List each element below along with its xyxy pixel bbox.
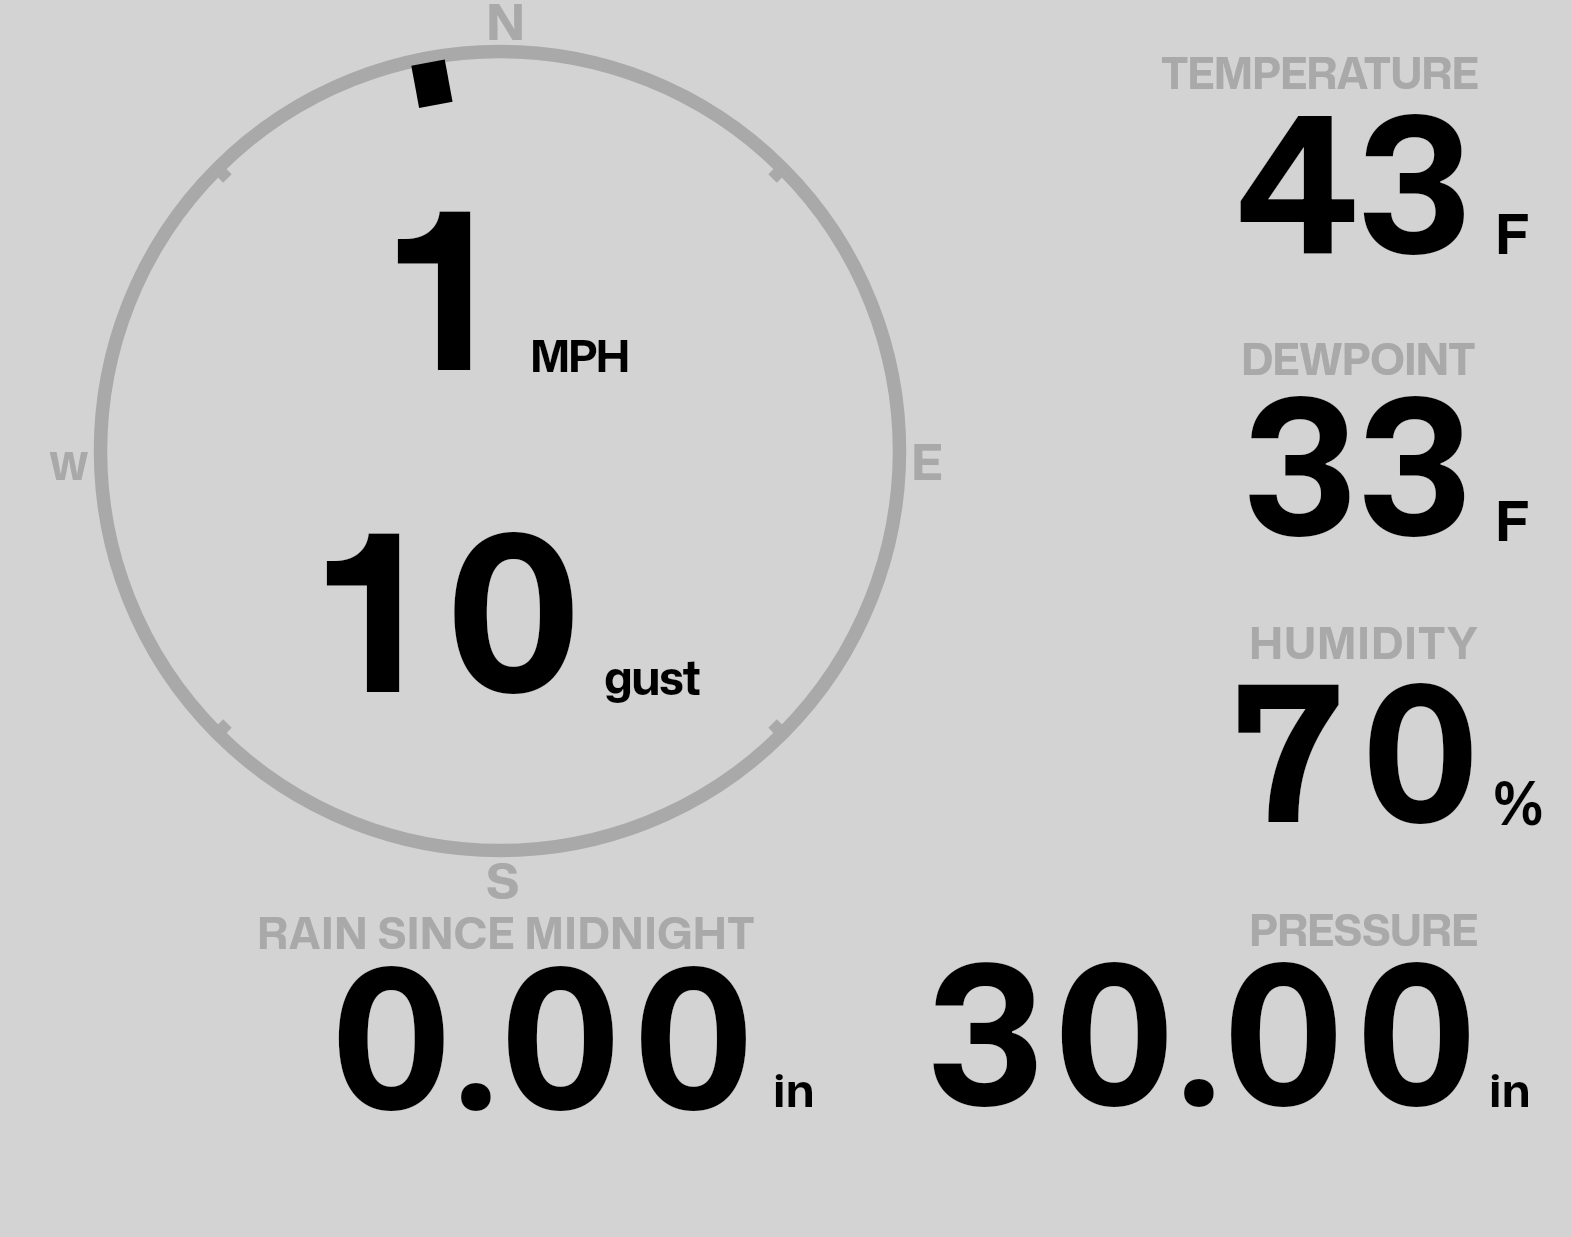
button[interactable]: Humidity 70 percent <box>1140 608 1560 838</box>
staticText: MPH <box>530 324 629 386</box>
staticText: % <box>1492 759 1545 845</box>
button[interactable]: Dewpoint 33 degrees Fahrenheit <box>1140 325 1560 555</box>
staticText: 33 <box>1244 328 1472 596</box>
staticText: PRESSURE <box>1249 899 1478 960</box>
staticText: 70 <box>1232 615 1500 883</box>
staticText: HUMIDITY <box>1249 612 1479 673</box>
staticText: 10 <box>322 452 613 762</box>
button[interactable]: Wind compass, 1 MPH, gusting 10 <box>95 45 905 855</box>
staticText: in <box>1489 1057 1531 1122</box>
staticText: E <box>911 425 943 496</box>
staticText: 43 <box>1236 46 1472 314</box>
staticText: F <box>1495 194 1530 272</box>
staticText: W <box>49 437 89 492</box>
staticText: 30.00 <box>928 892 1485 1167</box>
staticText: 0.00 <box>331 896 762 1171</box>
staticText: N <box>486 0 526 56</box>
staticText: 1 <box>393 130 486 440</box>
staticText: gust <box>604 644 700 710</box>
staticText: DEWPOINT <box>1241 328 1475 389</box>
staticText: F <box>1495 481 1530 559</box>
staticText: RAIN SINCE MIDNIGHT <box>257 902 755 963</box>
staticText: in <box>773 1057 815 1122</box>
staticText: S <box>486 844 520 915</box>
button[interactable]: Pressure 30.00 inches <box>900 900 1550 1125</box>
button[interactable]: Temperature 43 degrees Fahrenheit <box>1140 40 1560 270</box>
button[interactable]: Rain since midnight 0.00 inches <box>250 900 830 1125</box>
staticText: TEMPERATURE <box>1161 42 1478 103</box>
